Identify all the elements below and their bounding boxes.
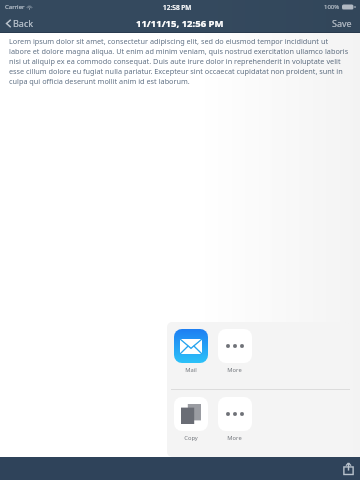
button[interactable]: Share [337,459,360,478]
staticText: Back [13,17,34,29]
button[interactable]: Save [324,14,360,32]
staticText: Mail [185,366,197,374]
staticText: More [227,434,242,442]
staticText: 11/11/15, 12:56 PM [136,17,224,30]
button[interactable]: Copy [173,397,208,442]
staticText: Lorem ipsum dolor sit amet, consectetur … [9,36,351,86]
button[interactable]: More [217,329,252,374]
staticText: 100% [324,3,340,11]
staticText: 12:58 PM [163,3,192,12]
staticText: Copy [184,434,198,442]
button[interactable]: More [217,397,252,442]
button[interactable]: Mail [173,329,208,374]
staticText: Save [332,17,352,29]
staticText: More [227,366,242,374]
staticText: Carrier [5,3,25,11]
button[interactable]: Back [0,14,42,32]
